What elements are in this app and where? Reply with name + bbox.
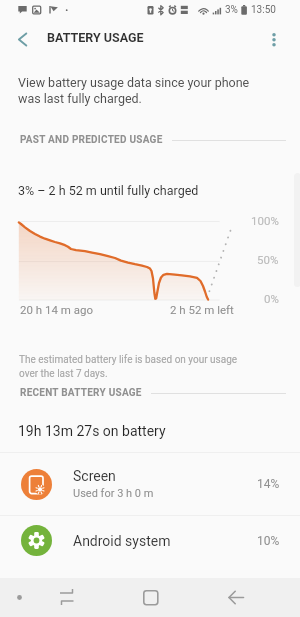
staticText: 3%: [225, 4, 238, 16]
button[interactable]: Home: [150, 578, 225, 617]
button[interactable]: Recents: [75, 578, 150, 617]
staticText: 3% – 2 h 52 m until fully charged: [18, 183, 199, 198]
staticText: Used for 3 h 0 m: [73, 487, 154, 500]
staticText: 100%: [251, 214, 279, 227]
staticText: 20 h 14 m ago: [20, 303, 93, 316]
staticText: BATTERY USAGE: [47, 30, 144, 45]
staticText: 50%: [257, 253, 279, 266]
button[interactable]: Back: [225, 578, 300, 617]
staticText: RECENT BATTERY USAGE: [20, 387, 142, 399]
button[interactable]: Screen: [0, 453, 300, 515]
staticText: 2 h 52 m left: [170, 303, 234, 316]
staticText: 13:50: [251, 4, 276, 16]
staticText: 0%: [264, 292, 279, 305]
staticText: Android system: [73, 533, 171, 549]
button[interactable]: Navigate up: [4, 18, 42, 56]
button[interactable]: Notifications: [0, 578, 75, 617]
staticText: PAST AND PREDICTED USAGE: [20, 134, 163, 146]
staticText: 19h 13m 27s on battery: [18, 423, 166, 439]
button[interactable]: More options: [260, 18, 290, 48]
staticText: 14%: [257, 477, 280, 491]
staticText: View battery usage data since your phone…: [18, 75, 250, 106]
staticText: The estimated battery life is based on y…: [19, 354, 238, 380]
staticText: 10%: [257, 534, 280, 548]
staticText: Screen: [73, 468, 116, 484]
button[interactable]: Android system: [0, 516, 300, 565]
